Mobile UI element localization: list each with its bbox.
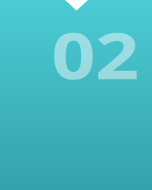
staticText: 02: [58, 11, 132, 97]
button[interactable]: Step 02: [0, 0, 152, 190]
